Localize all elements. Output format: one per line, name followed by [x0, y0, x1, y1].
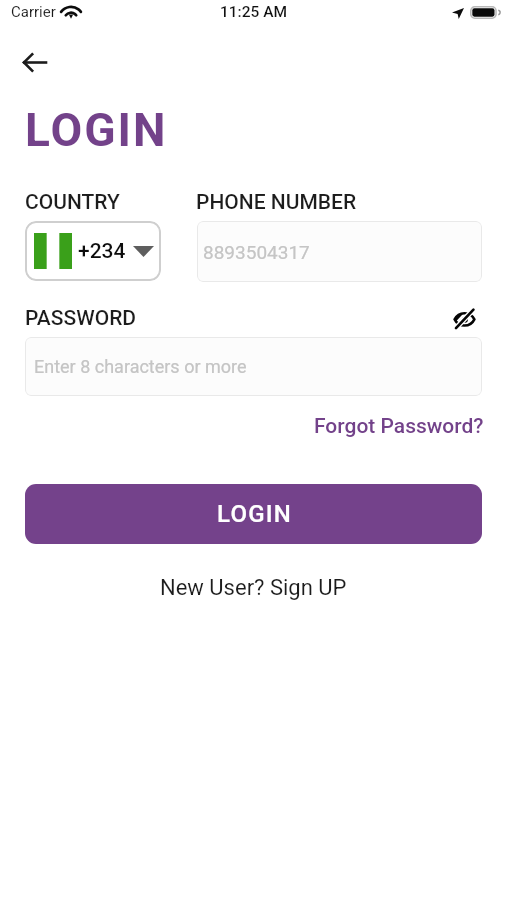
- staticText: PHONE NUMBER: [196, 190, 357, 215]
- button[interactable]: New User? Sign UP: [160, 575, 347, 601]
- button[interactable]: Back: [18, 45, 52, 79]
- staticText: PASSWORD: [25, 306, 137, 331]
- button[interactable]: LOGIN: [25, 484, 482, 544]
- button[interactable]: 8893504317: [197, 221, 482, 282]
- button[interactable]: Enter 8 characters or more: [25, 337, 482, 396]
- button[interactable]: Forgot Password?: [314, 414, 484, 439]
- staticText: LOGIN: [25, 103, 168, 157]
- staticText: COUNTRY: [25, 190, 120, 215]
- staticText: Forgot Password?: [314, 414, 484, 439]
- staticText: 11:25 AM: [220, 3, 288, 21]
- staticText: 8893504317: [203, 241, 310, 263]
- button[interactable]: +234: [25, 221, 161, 281]
- staticText: Carrier: [11, 3, 56, 21]
- staticText: +234: [78, 239, 126, 264]
- staticText: Enter 8 characters or more: [34, 356, 247, 377]
- staticText: LOGIN: [217, 500, 292, 528]
- button[interactable]: Show password: [448, 303, 480, 335]
